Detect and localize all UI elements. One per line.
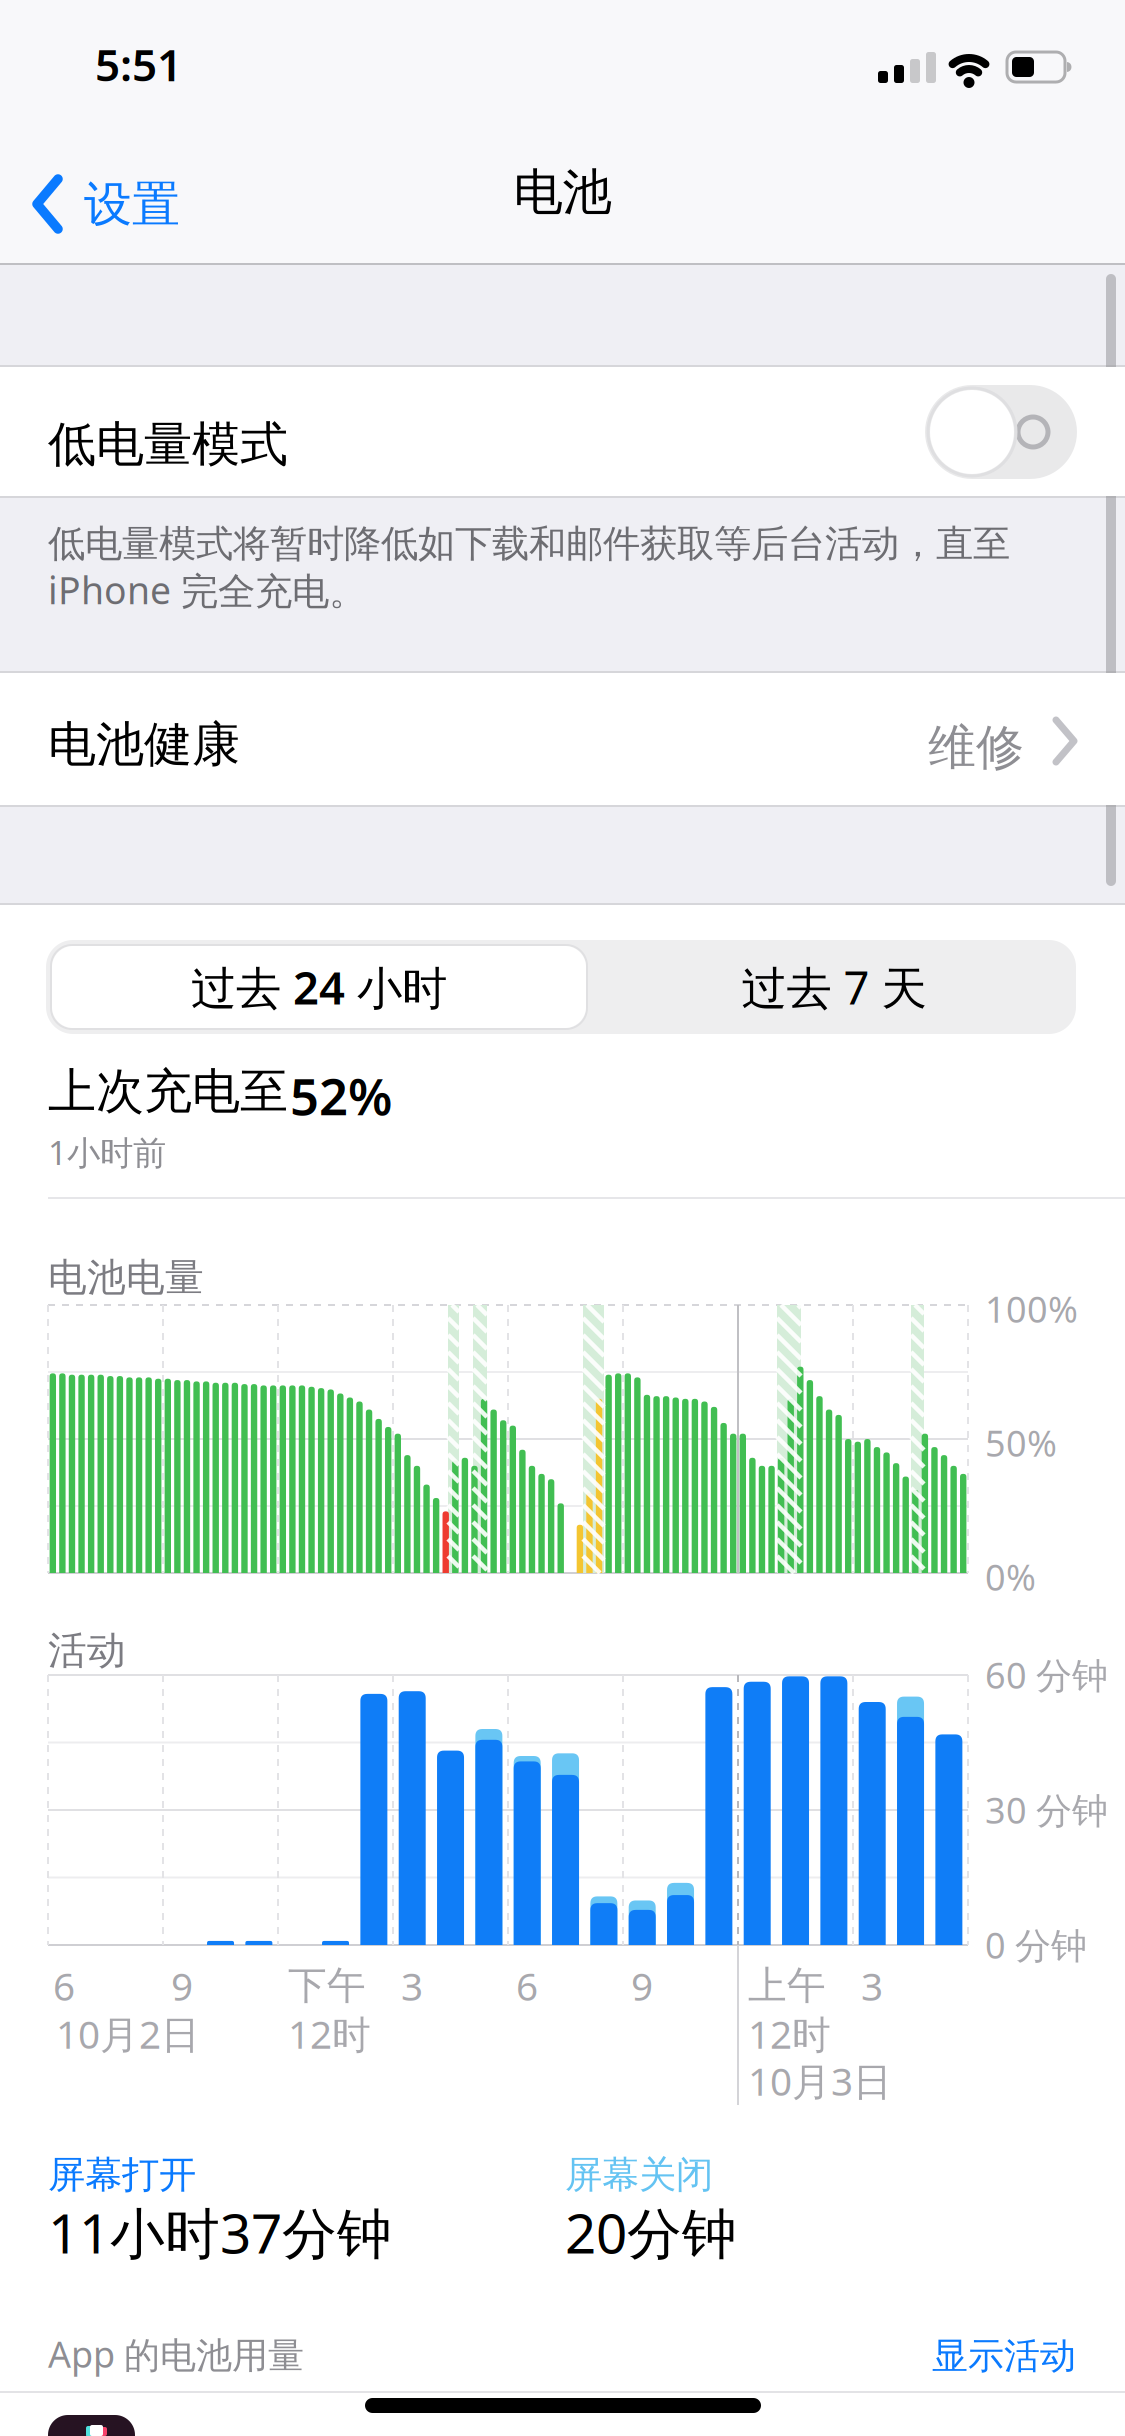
staticText: 上次充电至 <box>48 1062 288 1121</box>
staticText: 维修 <box>928 718 1024 777</box>
staticText: 11小时37分钟 <box>48 2196 392 2269</box>
staticText: 52% <box>290 1062 392 1129</box>
staticText: iPhone 完全充电。 <box>48 565 366 615</box>
staticText: 5:51 <box>95 35 182 93</box>
button[interactable]: 设置 <box>33 168 283 248</box>
staticText: 屏幕打开 <box>48 2152 196 2198</box>
staticText: 低电量模式 <box>48 415 288 474</box>
staticText: 下午 <box>288 1962 366 2009</box>
staticText: 上午 <box>748 1962 826 2009</box>
staticText: 电池健康 <box>48 715 240 774</box>
staticText: 100% <box>985 1285 1078 1333</box>
staticText: 9 <box>631 1960 653 2011</box>
staticText: 60 分钟 <box>985 1651 1108 1699</box>
staticText: 3 <box>861 1960 883 2011</box>
staticText: 活动 <box>48 1627 126 1674</box>
staticText: 12时 <box>748 2008 831 2059</box>
staticText: 12时 <box>288 2008 371 2059</box>
staticText: 低电量模式将暂时降低如下载和邮件获取等后台活动，直至 <box>48 521 1010 567</box>
button[interactable]: 电池健康 <box>0 673 1125 805</box>
staticText: 设置 <box>84 175 180 234</box>
staticText: 10月2日 <box>56 2008 200 2059</box>
staticText: 屏幕关闭 <box>565 2152 713 2198</box>
button[interactable]: 过去 7 天 <box>592 940 1076 1034</box>
staticText: 6 <box>53 1960 75 2011</box>
staticText: 10月3日 <box>748 2055 892 2106</box>
staticText: 电池电量 <box>48 1254 204 1301</box>
staticText: 6 <box>516 1960 538 2011</box>
staticText: 50% <box>985 1419 1057 1467</box>
staticText: 电池 <box>513 162 611 223</box>
staticText: 30 分钟 <box>985 1786 1108 1834</box>
staticText: 3 <box>401 1960 423 2011</box>
staticText: 0% <box>985 1553 1036 1601</box>
staticText: 过去 7 天 <box>741 957 926 1017</box>
staticText: 0 分钟 <box>985 1921 1087 1969</box>
button[interactable]: 过去 24 小时 <box>46 940 592 1034</box>
button[interactable]: 显示活动 <box>932 2334 1076 2378</box>
button[interactable] <box>925 385 1077 479</box>
staticText: 显示活动 <box>932 2334 1076 2378</box>
staticText: 20分钟 <box>565 2196 737 2269</box>
staticText: 过去 24 小时 <box>191 957 447 1017</box>
staticText: 1小时前 <box>48 1130 166 1174</box>
staticText: 9 <box>171 1960 193 2011</box>
staticText: App 的电池用量 <box>48 2330 304 2378</box>
